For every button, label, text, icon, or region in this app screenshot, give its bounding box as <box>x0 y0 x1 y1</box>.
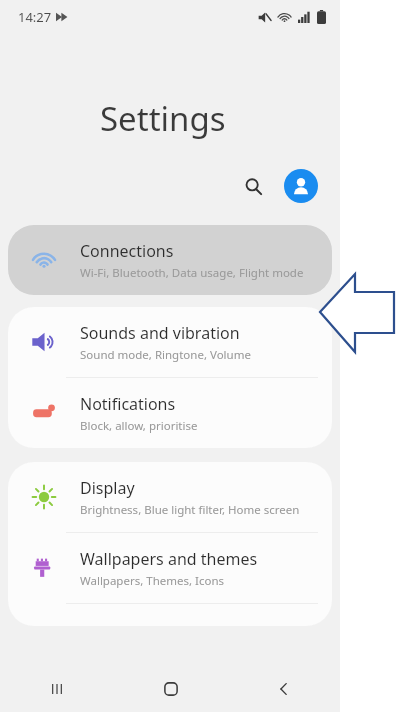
staticText: Brightness, Blue light filter, Home scre… <box>80 502 300 518</box>
staticText: 14:27 <box>18 8 52 26</box>
staticText: Wi-Fi, Bluetooth, Data usage, Flight mod… <box>80 265 304 281</box>
button[interactable]: Account <box>284 169 318 203</box>
staticText: Notifications <box>80 393 176 415</box>
button[interactable]: Recent apps <box>0 666 114 712</box>
button[interactable]: Sounds and vibration <box>8 307 332 377</box>
button[interactable]: Notifications <box>8 378 332 448</box>
staticText: Sound mode, Ringtone, Volume <box>80 347 251 363</box>
button[interactable]: Connections <box>8 225 332 295</box>
staticText: Settings <box>100 96 226 141</box>
button[interactable]: Search <box>236 169 270 203</box>
staticText: Wallpapers, Themes, Icons <box>80 573 225 589</box>
button[interactable]: Wallpapers and themes <box>8 533 332 603</box>
staticText: Display <box>80 477 135 499</box>
button[interactable]: Display <box>8 462 332 532</box>
button[interactable]: Back <box>227 666 340 712</box>
staticText: Sounds and vibration <box>80 322 240 344</box>
staticText: Wallpapers and themes <box>80 548 258 570</box>
button[interactable]: Home <box>114 666 227 712</box>
staticText: Block, allow, prioritise <box>80 418 198 434</box>
staticText: Connections <box>80 240 174 262</box>
